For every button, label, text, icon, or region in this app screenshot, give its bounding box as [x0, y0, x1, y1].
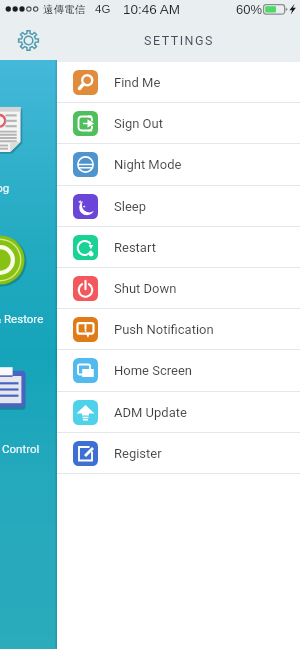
staticText: Night Mode — [114, 157, 182, 172]
button[interactable]: Home Screen — [0, 350, 300, 391]
staticText: 60% — [236, 2, 263, 17]
button[interactable]: Open navigation menu — [0, 18, 57, 62]
staticText: Sleep — [114, 199, 146, 214]
staticText: Home Screen — [114, 363, 192, 378]
button[interactable]: Control — [0, 368, 27, 408]
button[interactable]: Push Notification — [0, 309, 300, 349]
button[interactable]: ADM Update — [0, 392, 300, 432]
button[interactable]: Restart — [0, 227, 300, 267]
button[interactable]: & Restore — [0, 235, 25, 285]
staticText: 遠傳電信 — [43, 3, 85, 16]
staticText: Register — [114, 446, 162, 461]
button[interactable]: Sign Out — [0, 103, 300, 143]
staticText: Restart — [114, 240, 156, 255]
button[interactable]: Register — [0, 433, 300, 473]
staticText: SETTINGS — [144, 33, 214, 48]
staticText: 4G — [95, 3, 111, 16]
staticText: Sign Out — [114, 116, 163, 131]
staticText: Shut Down — [114, 281, 177, 296]
staticText: ADM Update — [114, 405, 187, 420]
button[interactable]: Log — [0, 106, 24, 153]
button[interactable]: Find Me — [0, 62, 300, 102]
staticText: Push Notification — [114, 322, 214, 337]
button[interactable]: Sleep — [0, 186, 300, 226]
staticText: 10:46 AM — [123, 2, 181, 17]
staticText: Log — [0, 181, 10, 194]
staticText: Control — [2, 442, 40, 455]
button[interactable]: Shut Down — [0, 268, 300, 308]
staticText: & Restore — [0, 312, 44, 325]
button[interactable]: Night Mode — [0, 144, 300, 185]
staticText: Find Me — [114, 75, 161, 90]
